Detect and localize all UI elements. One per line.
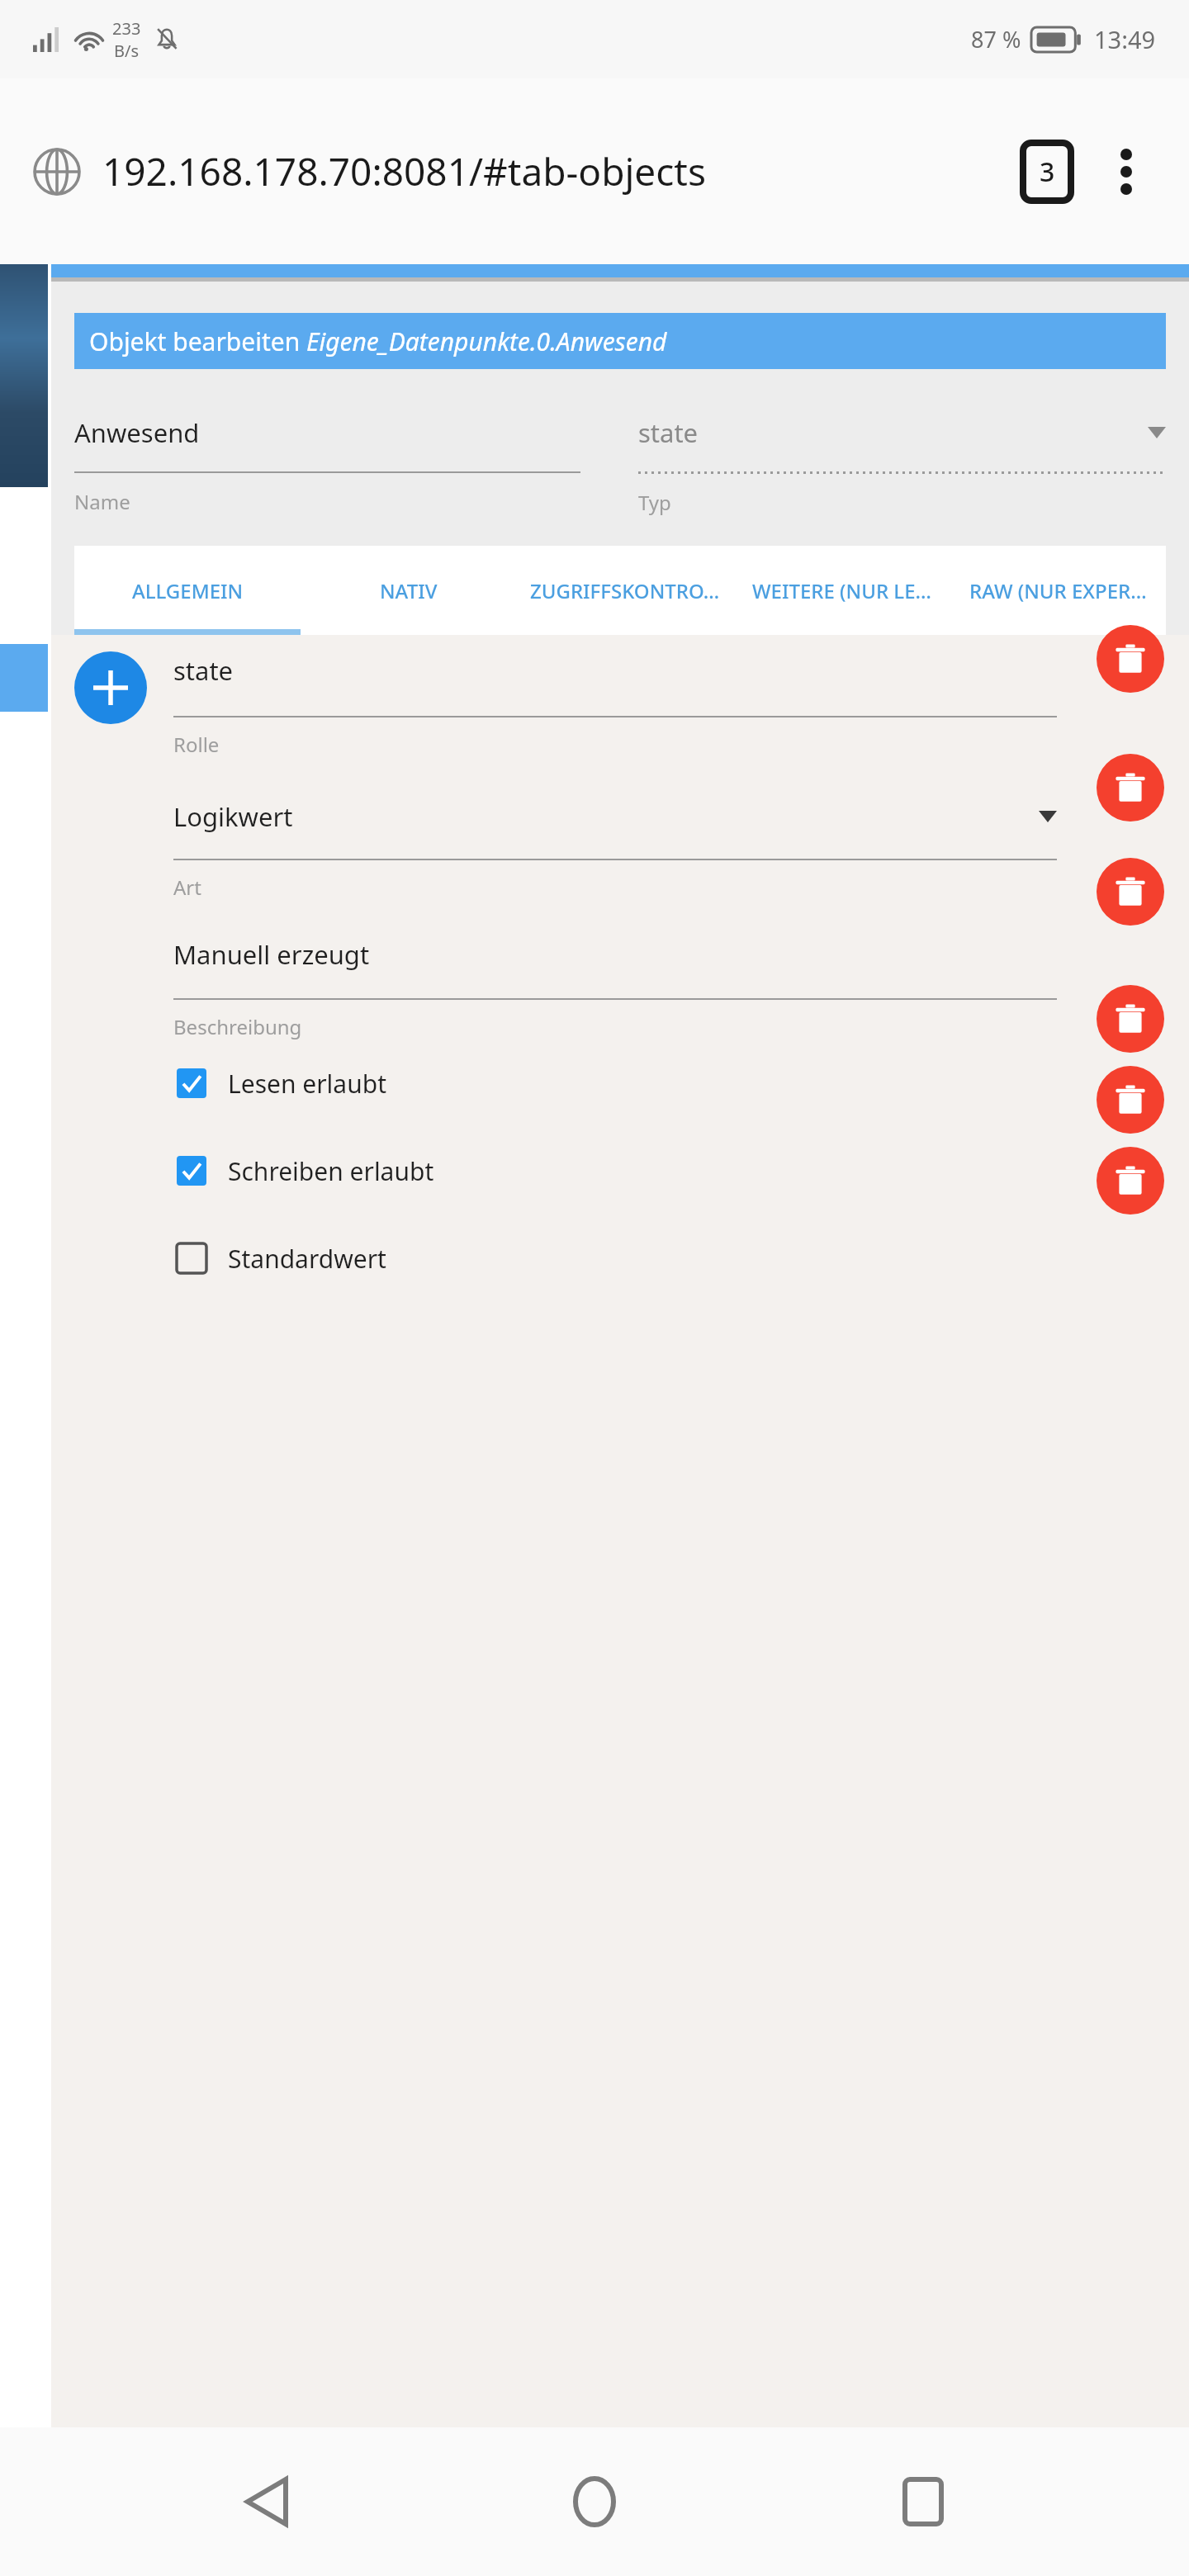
button[interactable]: Objekt bearbeiten <box>74 313 1166 369</box>
staticText: 87 % <box>971 24 1021 54</box>
staticText: state <box>638 415 699 450</box>
button[interactable]: Delete <box>1097 754 1164 822</box>
staticText: state <box>173 653 234 688</box>
button[interactable]: ALLGEMEIN <box>74 546 301 635</box>
button[interactable]: Delete <box>1097 985 1164 1053</box>
staticText: Objekt bearbeiten <box>89 324 306 358</box>
staticText: Eigene_Datenpunkte.0.Anwesend <box>306 324 667 358</box>
staticText: Name <box>74 488 130 515</box>
staticText: 233 <box>112 17 141 40</box>
staticText: Typ <box>638 489 671 516</box>
staticText: ZUGRIFFSKONTRO… <box>530 577 720 604</box>
staticText: B/s <box>114 40 140 62</box>
button[interactable]: More options <box>1087 132 1166 211</box>
button[interactable]: Delete <box>1097 1066 1164 1134</box>
button[interactable]: Back <box>205 2440 329 2564</box>
staticText: WEITERE (NUR LE… <box>752 577 931 604</box>
button[interactable]: Site information <box>30 144 84 199</box>
button[interactable]: 192.168.178.70:8081/#tab-objects <box>102 145 1001 197</box>
staticText: Lesen erlaubt <box>228 1067 386 1101</box>
button[interactable]: WEITERE (NUR LE… <box>733 546 950 635</box>
staticText: RAW (NUR EXPER… <box>969 577 1147 604</box>
button[interactable]: Recent apps <box>861 2440 985 2564</box>
button[interactable]: Home <box>533 2440 656 2564</box>
staticText: 3 <box>1040 154 1055 190</box>
button[interactable]: ZUGRIFFSKONTRO… <box>517 546 733 635</box>
staticText: Rolle <box>173 731 220 758</box>
staticText: Standardwert <box>228 1242 386 1276</box>
button[interactable]: Standardwert <box>173 1240 1057 1276</box>
button[interactable]: Tabs <box>1007 132 1087 211</box>
staticText: NATIV <box>380 577 438 604</box>
staticText: Anwesend <box>74 415 200 450</box>
button[interactable]: Schreiben erlaubt <box>173 1153 1057 1189</box>
button[interactable]: Lesen erlaubt <box>173 1065 1057 1101</box>
staticText: Schreiben erlaubt <box>228 1154 434 1188</box>
button[interactable]: Delete <box>1097 1147 1164 1215</box>
staticText: Art <box>173 874 201 901</box>
button[interactable]: RAW (NUR EXPER… <box>950 546 1166 635</box>
staticText: 13:49 <box>1094 23 1156 55</box>
button[interactable]: Delete <box>1097 625 1164 693</box>
staticText: 192.168.178.70:8081/#tab-objects <box>102 145 706 197</box>
button[interactable]: Delete <box>1097 858 1164 926</box>
staticText: ALLGEMEIN <box>132 577 244 604</box>
button[interactable]: Add <box>74 651 147 724</box>
staticText: Logikwert <box>173 799 293 834</box>
staticText: Manuell erzeugt <box>173 937 370 972</box>
staticText: Beschreibung <box>173 1013 302 1040</box>
button[interactable]: NATIV <box>301 546 517 635</box>
